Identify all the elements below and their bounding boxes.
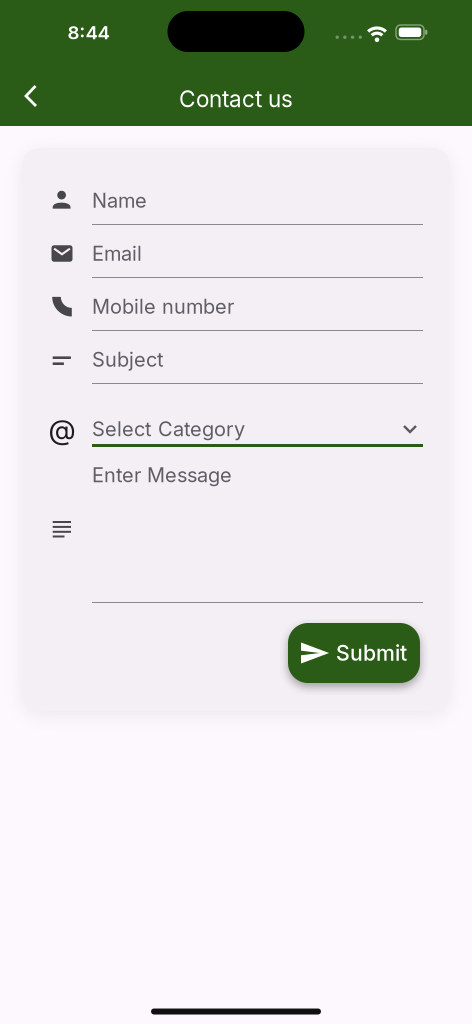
button[interactable]: Subject: [52, 336, 423, 384]
staticText: Contact us: [179, 86, 293, 112]
button[interactable]: Submit: [288, 623, 420, 683]
button[interactable]: Mobile number: [52, 283, 423, 331]
button[interactable]: Email: [52, 230, 423, 278]
staticText: Email: [92, 242, 142, 265]
button[interactable]: @: [52, 384, 423, 447]
staticText: Select Category: [92, 417, 245, 441]
staticText: Mobile number: [92, 295, 234, 318]
staticText: Name: [92, 189, 147, 212]
button[interactable]: Back: [16, 77, 46, 115]
staticText: @: [48, 412, 75, 445]
staticText: Submit: [336, 640, 407, 666]
button[interactable]: Enter Message: [52, 447, 423, 603]
button[interactable]: Name: [52, 177, 423, 225]
staticText: Enter Message: [92, 463, 232, 487]
staticText: 8:44: [67, 21, 109, 43]
staticText: Subject: [92, 348, 164, 371]
